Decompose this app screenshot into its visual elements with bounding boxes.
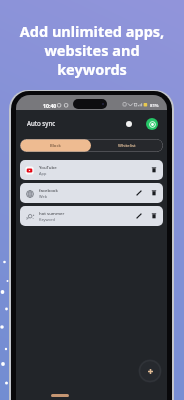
staticText: facebook: [39, 187, 58, 193]
button[interactable]: facebook: [20, 183, 163, 203]
button[interactable]: Add: [138, 359, 162, 383]
button[interactable]: Delete: [150, 212, 158, 220]
staticText: Block: [50, 143, 61, 149]
button[interactable]: hot summer: [20, 206, 163, 226]
button[interactable]: Whitelist: [91, 139, 163, 152]
button[interactable]: Sync status: [146, 118, 158, 130]
staticText: App: [39, 171, 47, 176]
staticText: 81%: [150, 103, 159, 109]
staticText: YouTube: [39, 164, 57, 170]
staticText: Web: [39, 194, 48, 199]
button[interactable]: Edit: [135, 189, 143, 197]
staticText: Keyword: [39, 217, 55, 222]
staticText: hot summer: [39, 210, 65, 216]
button[interactable]: Block: [20, 139, 91, 152]
staticText: Auto sync: [27, 119, 56, 127]
button[interactable]: Delete: [150, 189, 158, 197]
staticText: Add unlimited apps, websites and keyword…: [0, 21, 184, 79]
button[interactable]: Edit: [135, 212, 143, 220]
staticText: Whitelist: [118, 143, 136, 149]
button[interactable]: YouTube: [20, 160, 163, 180]
button[interactable]: Delete: [150, 166, 158, 174]
staticText: 10:40: [43, 102, 57, 109]
